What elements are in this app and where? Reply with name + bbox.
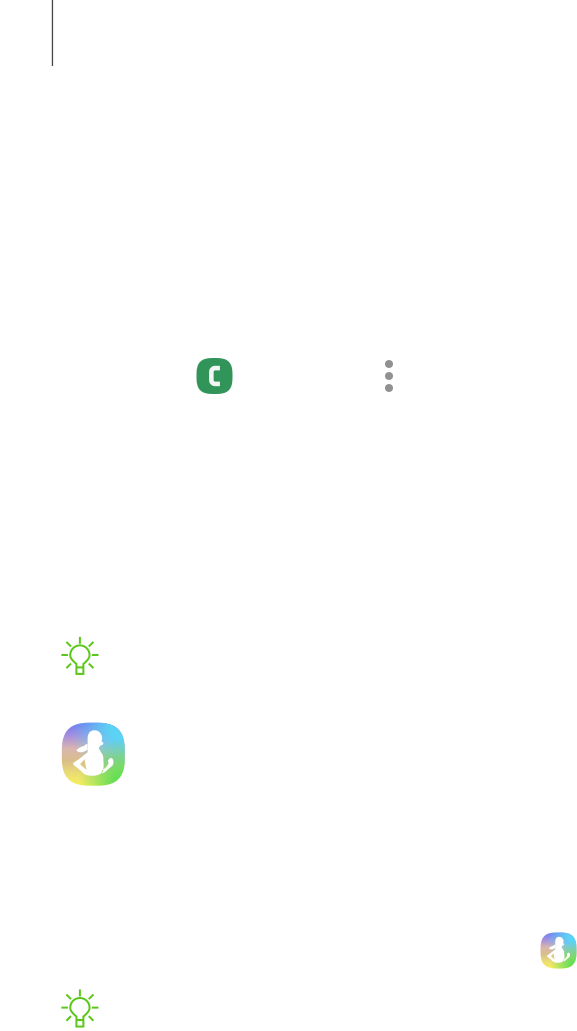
- button[interactable]: Samsung Health: [540, 932, 576, 968]
- button[interactable]: Samsung Health: [62, 723, 125, 786]
- button[interactable]: More options: [385, 360, 393, 392]
- button[interactable]: Phone: [196, 358, 232, 394]
